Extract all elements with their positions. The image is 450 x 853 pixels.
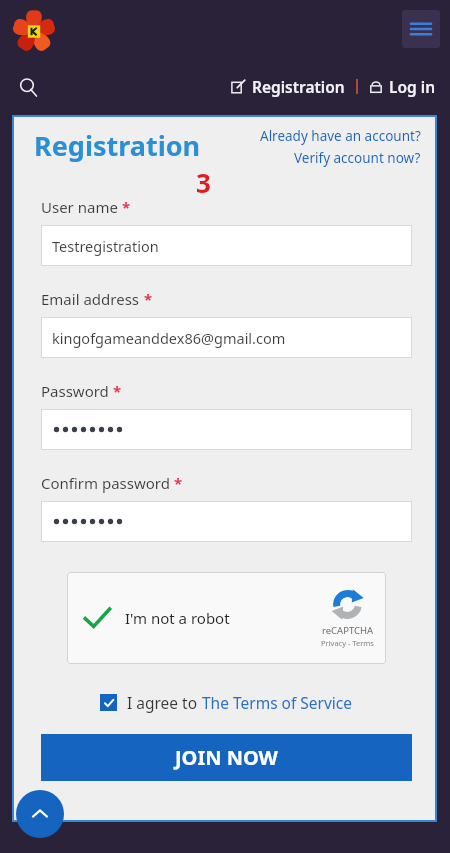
button[interactable]	[41, 409, 412, 450]
staticText: reCAPTCHA	[322, 624, 374, 637]
staticText: 3	[196, 165, 211, 200]
staticText: *	[174, 473, 183, 493]
staticText: Log in	[389, 76, 436, 97]
staticText: I agree to	[127, 692, 202, 713]
staticText: Password	[41, 381, 109, 401]
button[interactable]: Search	[12, 71, 44, 103]
staticText: User name	[41, 197, 118, 217]
button[interactable]: kingofgameanddex86@gmail.com	[41, 317, 412, 358]
staticText: *	[113, 381, 122, 401]
button[interactable]: JOIN NOW	[41, 734, 412, 781]
staticText: Privacy - Terms	[321, 638, 374, 648]
staticText: Confirm password	[41, 473, 170, 493]
button[interactable]: Verify account now?	[294, 149, 421, 167]
staticText: *	[144, 289, 153, 309]
button[interactable]: Scroll to top	[16, 790, 64, 838]
staticText: I'm not a robot	[125, 608, 230, 628]
button[interactable]: Already have an account?	[260, 127, 421, 145]
button[interactable]: Registration	[229, 76, 347, 97]
staticText: Email address	[41, 289, 140, 309]
staticText: Testregistration	[52, 236, 159, 256]
button[interactable]: I'm not a robot	[67, 572, 386, 664]
staticText: kingofgameanddex86@gmail.com	[52, 328, 286, 348]
button[interactable]: Log in	[367, 76, 438, 97]
button[interactable]: Menu	[402, 10, 440, 48]
staticText: Registration	[252, 76, 345, 97]
button[interactable]: I agree to	[41, 692, 412, 713]
button[interactable]	[41, 501, 412, 542]
button[interactable]: Home logo	[10, 8, 60, 58]
staticText: Registration	[34, 127, 201, 164]
staticText: *	[122, 197, 131, 217]
staticText: JOIN NOW	[175, 744, 278, 771]
staticText: The Terms of Service	[202, 692, 353, 713]
button[interactable]: Testregistration	[41, 225, 412, 266]
